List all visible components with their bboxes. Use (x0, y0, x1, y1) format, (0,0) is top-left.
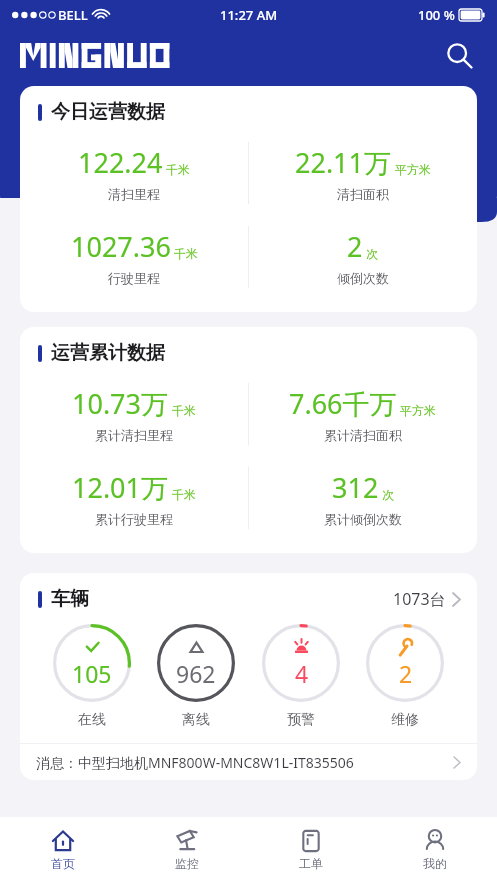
button[interactable]: 运营累计数据 (20, 327, 477, 553)
button[interactable]: 105 (53, 624, 131, 729)
staticText: 1073台 (393, 588, 446, 610)
staticText: 运营累计数据 (51, 341, 165, 365)
button[interactable]: 今日运营数据 (20, 86, 477, 312)
button[interactable]: 962 (157, 624, 235, 729)
staticText: 我的 (423, 856, 447, 871)
button[interactable]: 监控 (125, 817, 249, 883)
button[interactable]: 我的 (373, 817, 497, 883)
button[interactable]: 1073台 (393, 588, 461, 610)
staticText: 累计清扫面积 (324, 427, 402, 443)
staticText: 次 (366, 246, 378, 261)
staticText: 清扫面积 (337, 186, 389, 202)
staticText: 千米 (174, 246, 198, 261)
staticText: 105 (72, 658, 112, 689)
staticText: 7.66千万 (289, 385, 397, 422)
button[interactable]: 工单 (249, 817, 373, 883)
staticText: 监控 (175, 856, 199, 871)
staticText: 2 (399, 658, 413, 689)
staticText: 在线 (78, 711, 106, 729)
staticText: BELL (58, 6, 88, 24)
staticText: 平方米 (395, 162, 431, 177)
staticText: 122.24 (78, 144, 163, 181)
staticText: 312 (332, 469, 379, 506)
staticText: 22.11万 (295, 144, 392, 181)
staticText: 次 (382, 487, 394, 502)
staticText: 消息：中型扫地机MNF800W-MNC8W1L-IT835506 (36, 753, 354, 772)
staticText: 清扫里程 (108, 186, 160, 202)
staticText: 962 (176, 658, 216, 689)
staticText: 工单 (299, 856, 323, 871)
staticText: 平方米 (400, 403, 436, 418)
staticText: 累计倾倒次数 (324, 511, 402, 527)
button[interactable]: 2 (366, 624, 444, 729)
staticText: 100 % (418, 6, 455, 24)
button[interactable]: 首页 (0, 817, 125, 883)
staticText: 11:27 AM (220, 6, 278, 24)
staticText: 千米 (172, 487, 196, 502)
staticText: 首页 (51, 856, 75, 871)
staticText: 4 (295, 658, 309, 689)
staticText: 千米 (172, 403, 196, 418)
staticText: 预警 (287, 711, 315, 729)
button[interactable]: Search (439, 35, 479, 75)
staticText: 1027.36 (71, 228, 171, 265)
staticText: 行驶里程 (108, 270, 160, 286)
button[interactable]: 4 (262, 624, 340, 729)
staticText: 离线 (182, 711, 210, 729)
staticText: 倾倒次数 (337, 270, 389, 286)
button[interactable]: 消息：中型扫地机MNF800W-MNC8W1L-IT835506 (20, 744, 477, 780)
staticText: 累计清扫里程 (95, 427, 173, 443)
staticText: 维修 (391, 711, 419, 729)
staticText: 累计行驶里程 (95, 511, 173, 527)
staticText: 2 (347, 228, 363, 265)
staticText: 车辆 (51, 587, 89, 611)
staticText: 今日运营数据 (51, 100, 165, 124)
staticText: 12.01万 (72, 469, 169, 506)
staticText: 千米 (166, 162, 190, 177)
staticText: 10.73万 (72, 385, 169, 422)
